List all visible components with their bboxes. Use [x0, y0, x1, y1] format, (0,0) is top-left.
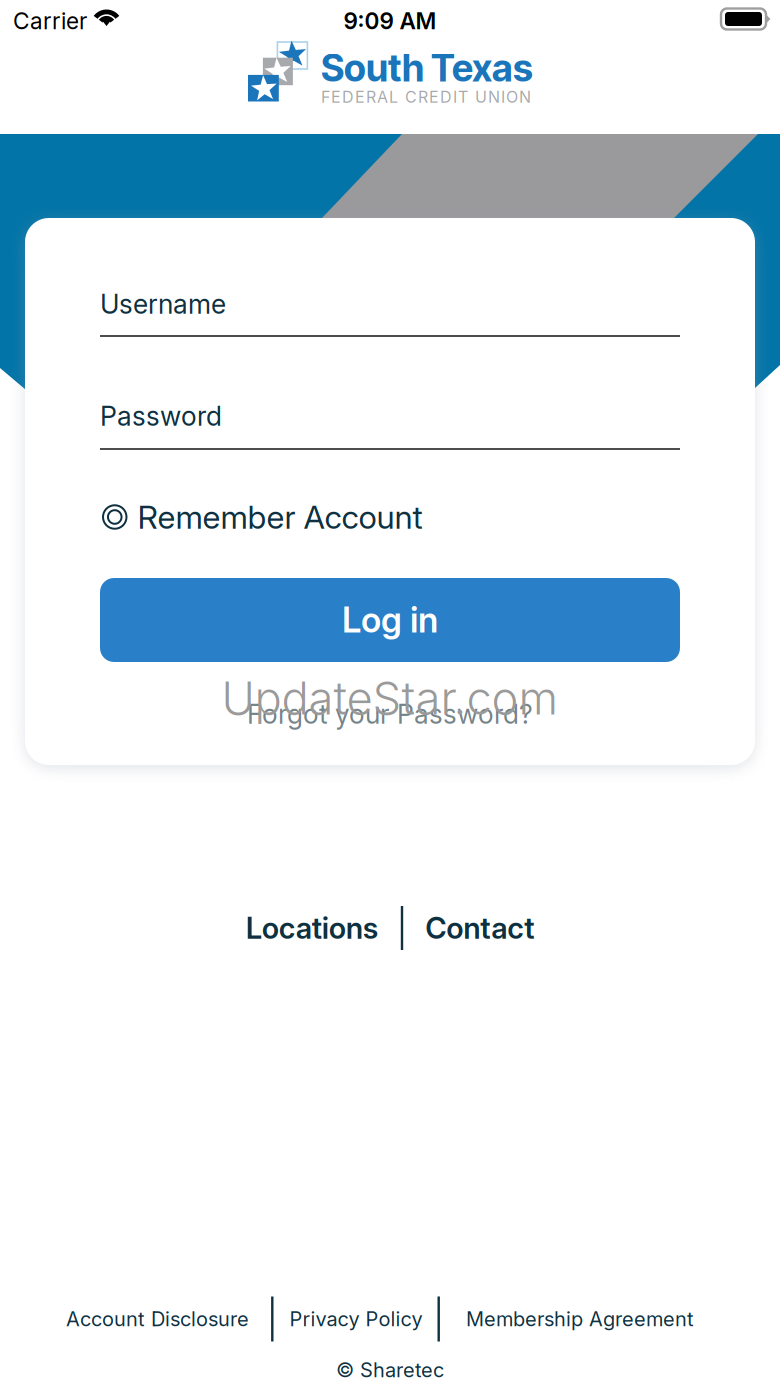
button[interactable]: Remember Account — [103, 500, 683, 534]
button[interactable]: Forgot your Password? — [100, 697, 680, 731]
button[interactable]: Locations — [246, 910, 379, 946]
staticText: Remember Account — [137, 498, 422, 536]
staticText: Forgot your Password? — [247, 698, 533, 730]
staticText: 9:09 AM — [343, 7, 436, 35]
button[interactable]: Account Disclosure — [66, 1307, 249, 1331]
button[interactable]: Log in — [100, 578, 680, 662]
staticText: Membership Agreement — [466, 1307, 694, 1331]
staticText: © Sharetec — [336, 1358, 444, 1382]
staticText: UpdateStar.com — [221, 671, 558, 725]
staticText: Privacy Policy — [289, 1307, 422, 1331]
staticText: Locations — [246, 910, 379, 946]
staticText: Username — [100, 288, 226, 320]
button[interactable]: Membership Agreement — [466, 1307, 694, 1331]
button[interactable]: Privacy Policy — [289, 1307, 422, 1331]
staticText: FEDERAL CREDIT UNION — [321, 87, 531, 107]
staticText: Carrier — [13, 7, 87, 35]
staticText: Account Disclosure — [66, 1307, 249, 1331]
staticText: Password — [100, 400, 222, 432]
staticText: South Texas — [321, 45, 533, 91]
staticText: Log in — [342, 599, 438, 641]
button[interactable]: Contact — [425, 910, 534, 946]
staticText: Contact — [425, 910, 534, 946]
